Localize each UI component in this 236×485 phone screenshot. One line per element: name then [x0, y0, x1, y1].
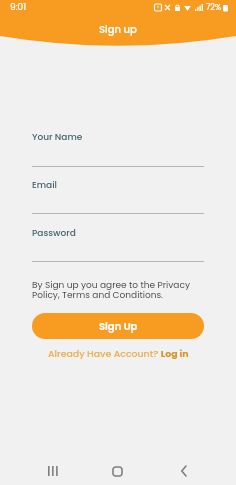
- staticText: Sign Up: [99, 319, 138, 333]
- staticText: Email: [32, 179, 57, 192]
- staticText: By Sign up you agree to the Privacy Poli…: [32, 279, 190, 301]
- button[interactable]: Sign Up: [32, 313, 204, 339]
- button[interactable]: Recent apps: [31, 457, 73, 485]
- staticText: Sign up: [99, 22, 137, 36]
- staticText: Password: [32, 227, 76, 240]
- button[interactable]: Back: [162, 457, 204, 485]
- staticText: 9:01: [10, 1, 27, 14]
- staticText: 72%: [206, 2, 222, 13]
- staticText: Your Name: [32, 131, 83, 144]
- button[interactable]: Home: [96, 457, 138, 485]
- button[interactable]: Already Have Account? Log in: [44, 343, 193, 364]
